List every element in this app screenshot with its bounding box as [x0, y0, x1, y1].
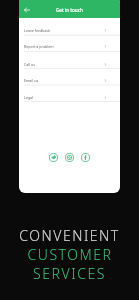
- staticText: CUSTOMER: [27, 245, 113, 264]
- button[interactable]: Twitter: [49, 153, 58, 162]
- button[interactable]: Instagram: [65, 153, 74, 162]
- staticText: Leave feedback: [24, 28, 51, 33]
- staticText: Report a problem: [24, 44, 54, 49]
- button[interactable]: Report a problem: [19, 35, 120, 51]
- staticText: Legal: [24, 95, 34, 100]
- button[interactable]: Facebook: [81, 153, 90, 162]
- staticText: Call us: [24, 62, 36, 67]
- staticText: Get in touch: [56, 7, 83, 13]
- button[interactable]: Legal: [19, 85, 120, 102]
- staticText: SERVICES: [33, 264, 106, 283]
- button[interactable]: Call us: [19, 52, 120, 69]
- button[interactable]: Email us: [19, 68, 120, 85]
- staticText: Email us: [24, 78, 39, 83]
- button[interactable]: Leave feedback: [19, 18, 120, 35]
- staticText: CONVENIENT: [19, 226, 120, 245]
- button[interactable]: Back: [22, 5, 31, 14]
